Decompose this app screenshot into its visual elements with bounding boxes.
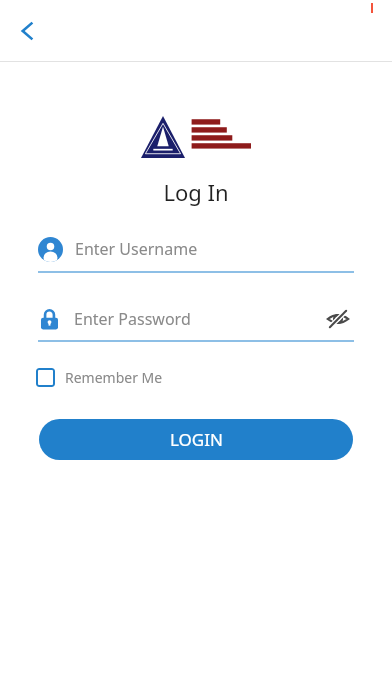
staticText: Enter Username: [75, 238, 198, 260]
button[interactable]: Enter Username: [38, 233, 354, 273]
button[interactable]: Remember Me: [36, 360, 163, 394]
button[interactable]: Back: [8, 11, 48, 51]
staticText: Log In: [163, 177, 229, 207]
button[interactable]: Enter Password: [38, 303, 354, 342]
staticText: Enter Password: [74, 308, 191, 330]
button[interactable]: Show password: [322, 303, 354, 335]
staticText: Remember Me: [65, 368, 163, 387]
button[interactable]: LOGIN: [39, 419, 353, 460]
staticText: LOGIN: [170, 428, 223, 451]
